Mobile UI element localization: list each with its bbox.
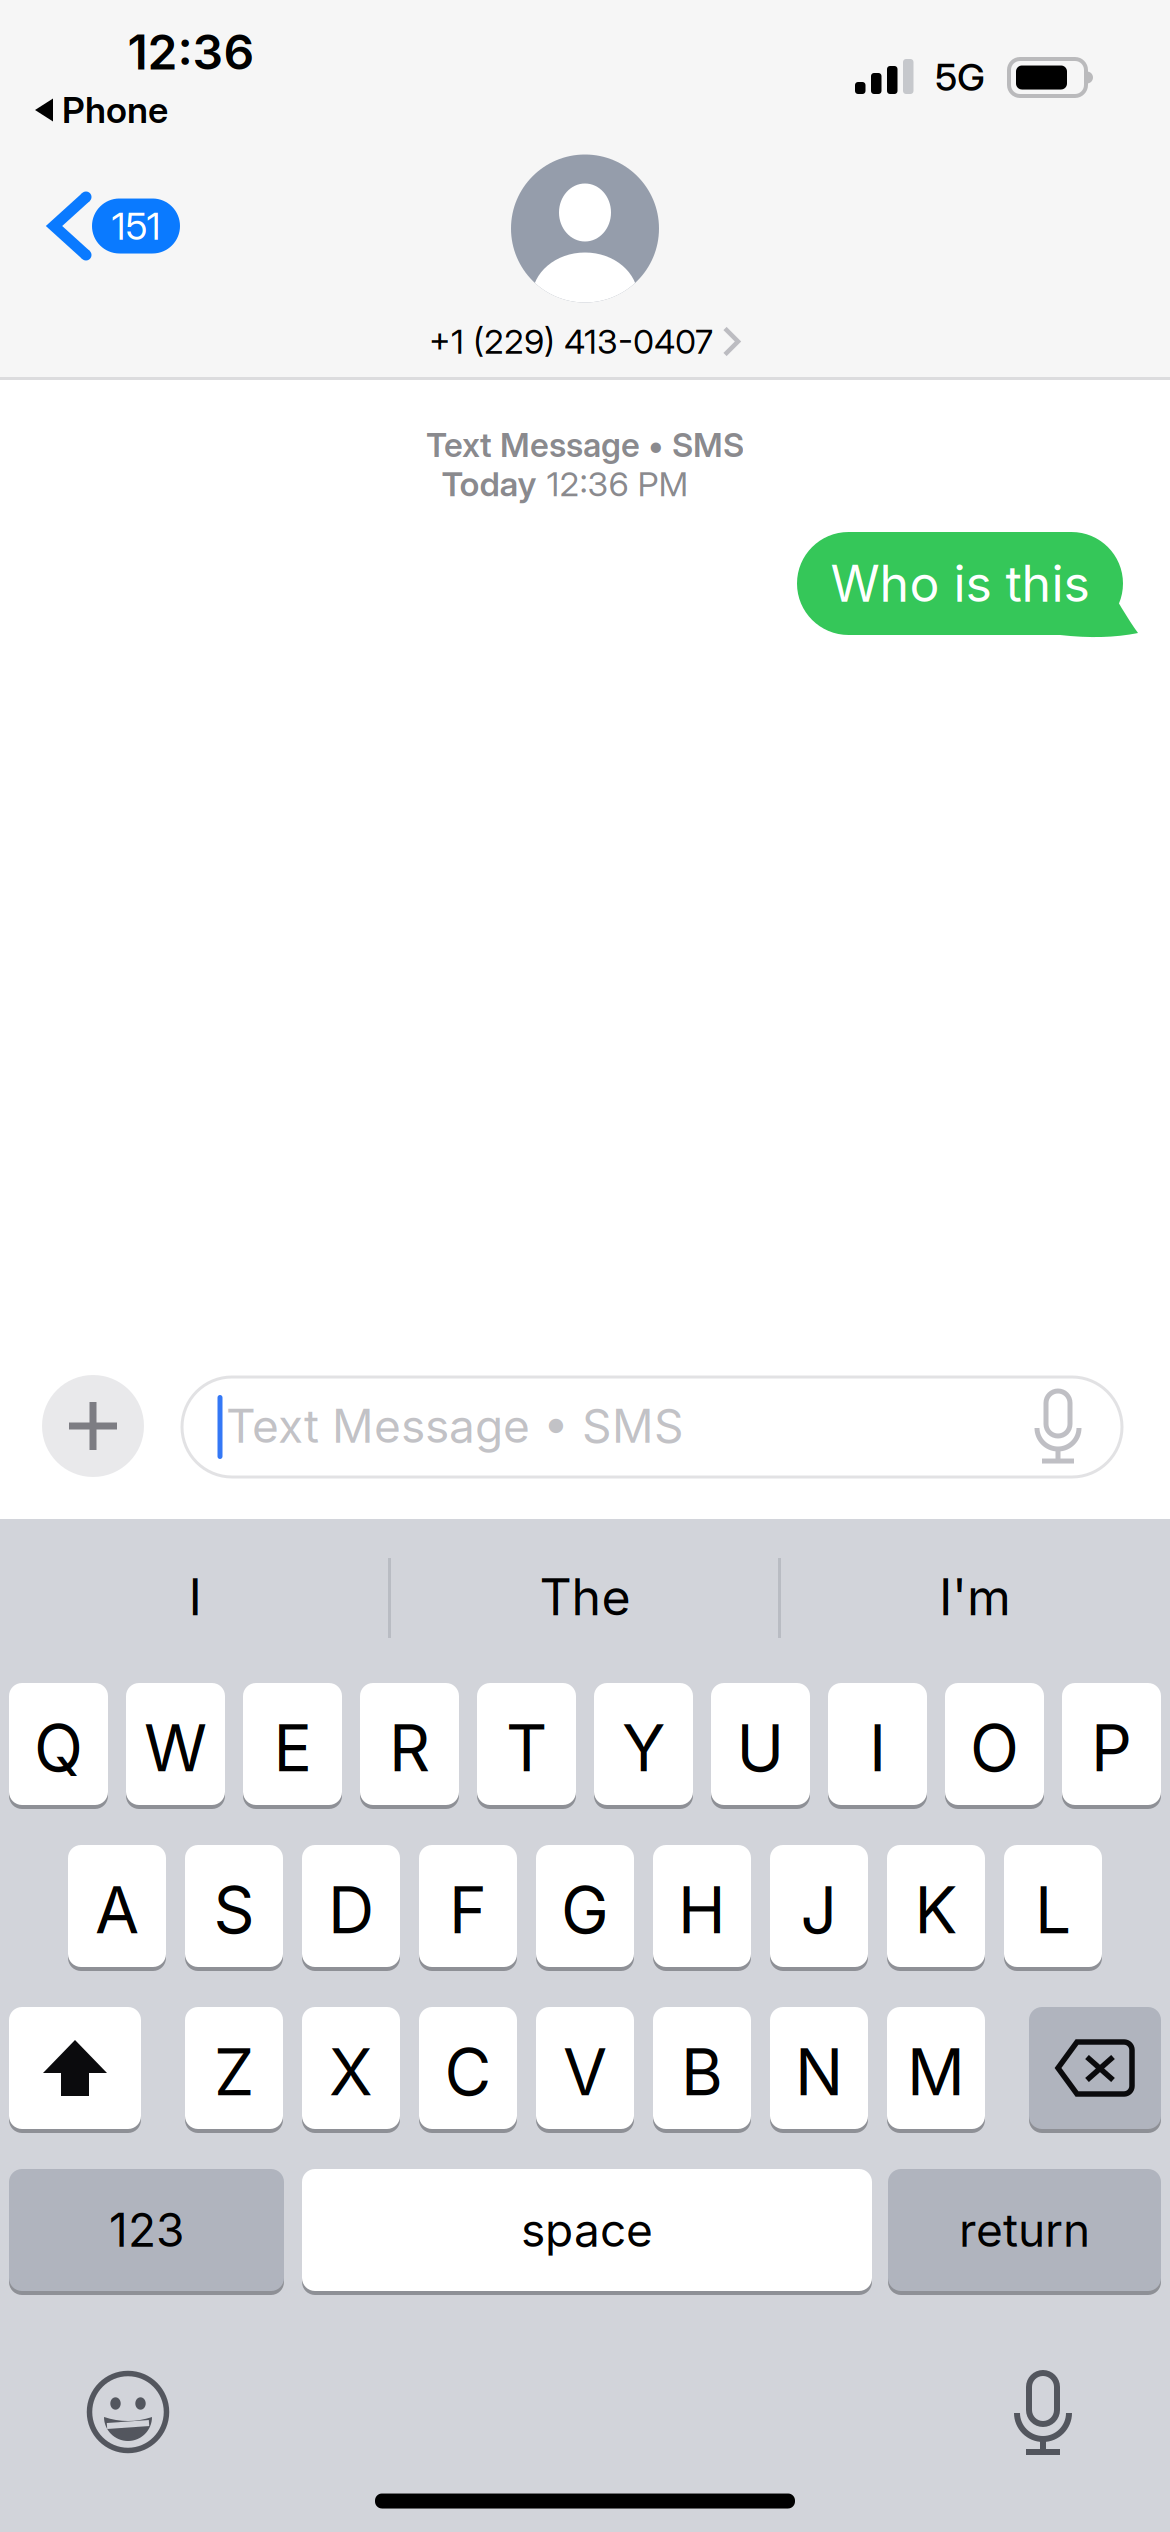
staticText: N <box>795 2033 843 2111</box>
button[interactable]: K <box>887 1845 985 1967</box>
staticText: I'm <box>939 1567 1011 1627</box>
staticText: +1 (229) 413-0407 <box>429 321 713 362</box>
button[interactable]: M <box>887 2007 985 2129</box>
button[interactable]: E <box>243 1683 342 1805</box>
button[interactable]: Back to conversation list, 151 unread <box>40 190 190 262</box>
staticText: space <box>521 2202 653 2258</box>
staticText: The <box>539 1567 630 1627</box>
button[interactable]: X <box>302 2007 400 2129</box>
staticText: Text Message • SMS <box>226 1398 684 1454</box>
staticText: I <box>188 1567 201 1627</box>
button[interactable]: Y <box>594 1683 693 1805</box>
staticText: Text Message • SMS <box>426 425 744 465</box>
staticText: D <box>328 1871 374 1949</box>
staticText: A <box>95 1871 139 1949</box>
button[interactable]: I <box>828 1683 927 1805</box>
button[interactable]: P <box>1062 1683 1161 1805</box>
button[interactable]: O <box>945 1683 1044 1805</box>
staticText: S <box>213 1871 254 1949</box>
staticText: 151 <box>111 203 160 249</box>
button[interactable]: Z <box>185 2007 283 2129</box>
button[interactable]: Text Message input field <box>182 1377 1122 1477</box>
button[interactable]: Delete <box>1029 2007 1161 2129</box>
staticText: O <box>970 1709 1019 1787</box>
staticText: M <box>907 2033 965 2111</box>
button[interactable]: J <box>770 1845 868 1967</box>
staticText: I <box>869 1709 886 1787</box>
button[interactable]: Apps <box>42 1375 144 1477</box>
staticText: K <box>914 1871 957 1949</box>
staticText: U <box>736 1709 784 1787</box>
button[interactable]: N <box>770 2007 868 2129</box>
staticText: 5G <box>935 54 985 100</box>
button[interactable]: B <box>653 2007 751 2129</box>
staticText: H <box>678 1871 726 1949</box>
button[interactable]: G <box>536 1845 634 1967</box>
button[interactable]: 123 <box>9 2169 284 2291</box>
button[interactable]: H <box>653 1845 751 1967</box>
staticText: Today <box>441 463 536 504</box>
staticText: Y <box>622 1709 665 1787</box>
staticText: L <box>1035 1871 1071 1949</box>
staticText: W <box>144 1709 207 1787</box>
staticText: return <box>959 2202 1090 2258</box>
staticText: C <box>444 2033 491 2111</box>
button[interactable]: L <box>1004 1845 1102 1967</box>
button[interactable]: U <box>711 1683 810 1805</box>
staticText: 12:36 PM <box>546 463 688 504</box>
button[interactable]: F <box>419 1845 517 1967</box>
button[interactable]: Return to Phone <box>35 86 215 134</box>
button[interactable]: A <box>68 1845 166 1967</box>
button[interactable]: Conversation details <box>429 154 741 363</box>
button[interactable]: The <box>395 1550 775 1644</box>
staticText: 12:36 <box>127 23 254 81</box>
button[interactable]: C <box>419 2007 517 2129</box>
button[interactable]: return <box>888 2169 1161 2291</box>
staticText: G <box>561 1871 609 1949</box>
staticText: E <box>273 1709 311 1787</box>
button[interactable]: Q <box>9 1683 108 1805</box>
button[interactable]: S <box>185 1845 283 1967</box>
button[interactable]: Dictation <box>998 2363 1088 2453</box>
staticText: R <box>389 1709 430 1787</box>
staticText: F <box>449 1871 487 1949</box>
button[interactable]: I <box>5 1550 385 1644</box>
button[interactable]: Shift <box>9 2007 141 2129</box>
staticText: Z <box>214 2033 254 2111</box>
staticText: Phone <box>62 88 168 132</box>
button[interactable]: Dictate <box>1008 1376 1108 1476</box>
staticText: Who is this <box>830 553 1089 614</box>
staticText: V <box>563 2033 607 2111</box>
button[interactable]: D <box>302 1845 400 1967</box>
button[interactable]: space <box>302 2169 872 2291</box>
staticText: 123 <box>109 2202 184 2258</box>
staticText: X <box>329 2033 373 2111</box>
staticText: T <box>506 1709 547 1787</box>
staticText: J <box>800 1871 837 1949</box>
button[interactable]: V <box>536 2007 634 2129</box>
button[interactable]: I'm <box>785 1550 1165 1644</box>
button[interactable]: T <box>477 1683 576 1805</box>
button[interactable]: R <box>360 1683 459 1805</box>
staticText: B <box>681 2033 723 2111</box>
button[interactable]: Emoji <box>83 2367 173 2457</box>
button[interactable]: W <box>126 1683 225 1805</box>
staticText: Q <box>34 1709 83 1787</box>
staticText: P <box>1091 1709 1132 1787</box>
